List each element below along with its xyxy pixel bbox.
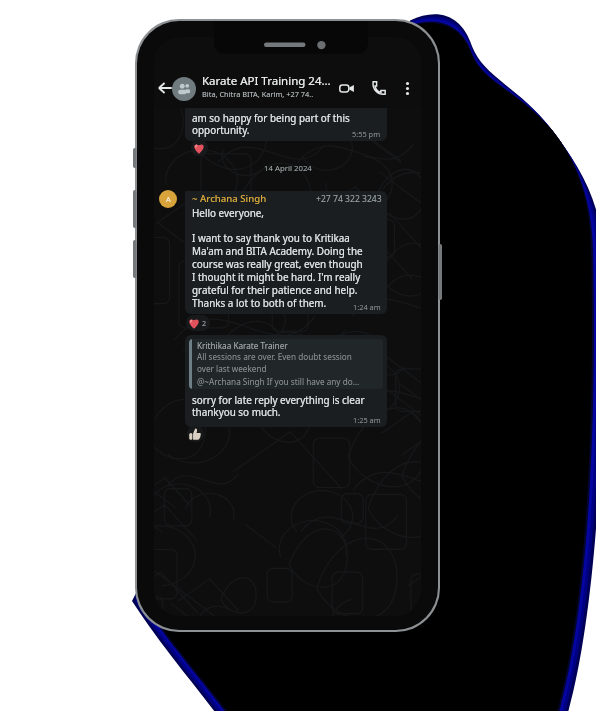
staticText: All sessions are over. Even doubt sessio… bbox=[197, 351, 360, 387]
button[interactable]: Video call bbox=[335, 77, 357, 99]
button[interactable]: am so happy for being part of this oppor… bbox=[185, 108, 387, 141]
staticText: ~ Archana Singh bbox=[192, 192, 267, 205]
staticText: Krithikaa Karate Trainer bbox=[197, 340, 288, 351]
staticText: +27 74 322 3243 bbox=[316, 193, 382, 205]
staticText: 2 bbox=[202, 318, 207, 328]
button[interactable]: Krithikaa Karate Trainer bbox=[185, 335, 387, 427]
button[interactable]: ~ Archana Singh bbox=[185, 191, 387, 314]
button[interactable]: Group avatar bbox=[172, 77, 196, 101]
staticText: 1:24 am bbox=[353, 302, 381, 312]
staticText: 14 April 2024 bbox=[264, 163, 312, 174]
button[interactable]: Thumbs up reaction bbox=[187, 426, 204, 442]
staticText: am so happy for being part of this oppor… bbox=[192, 111, 350, 137]
button[interactable]: Heart reaction bbox=[186, 315, 210, 331]
staticText: 5:55 pm bbox=[352, 129, 381, 139]
staticText: 1:25 am bbox=[353, 415, 381, 425]
staticText: A bbox=[166, 194, 171, 204]
button[interactable]: Heart reaction bbox=[191, 140, 208, 156]
staticText: Hello everyone, I want to say thank you … bbox=[192, 206, 363, 310]
button[interactable]: More options bbox=[397, 78, 417, 98]
staticText: Karate API Training 24… bbox=[202, 73, 331, 89]
button[interactable]: Back bbox=[154, 77, 176, 99]
button[interactable]: Archana Singh avatar bbox=[159, 190, 177, 208]
staticText: Bita, Chitra BITA, Karim, +27 74.. bbox=[202, 89, 314, 99]
button[interactable]: Voice call bbox=[368, 77, 390, 99]
staticText: sorry for late reply everything is clear… bbox=[192, 393, 365, 419]
